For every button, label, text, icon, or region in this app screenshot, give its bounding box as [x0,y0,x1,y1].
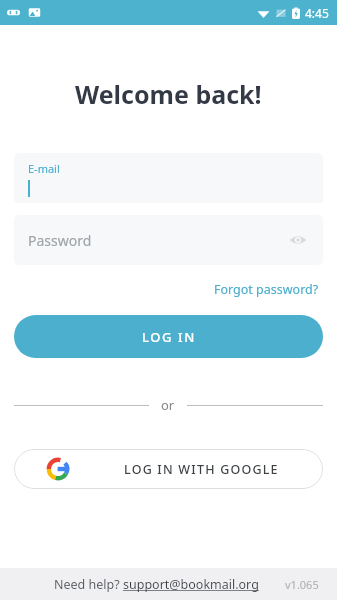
staticText: or [161,396,175,414]
button[interactable]: LOG IN [14,315,323,358]
staticText: Password [28,231,92,250]
staticText: E-mail [28,161,60,176]
staticText: support@bookmail.org [123,576,259,593]
button[interactable]: Forgot password? [210,277,323,302]
staticText: LOG IN [142,328,196,346]
staticText: Welcome back! [75,77,262,111]
button[interactable]: support@bookmail.org [123,576,259,593]
button[interactable]: Show password [281,223,315,257]
button[interactable]: E-mail [14,153,323,203]
staticText: Forgot password? [214,281,319,298]
staticText: 4:45 [305,5,329,21]
staticText: Need help? [54,576,123,593]
staticText: v1.065 [285,577,319,592]
staticText: LOG IN WITH GOOGLE [124,461,279,478]
button[interactable]: LOG IN WITH GOOGLE [14,449,323,489]
button[interactable]: Password [14,215,323,265]
